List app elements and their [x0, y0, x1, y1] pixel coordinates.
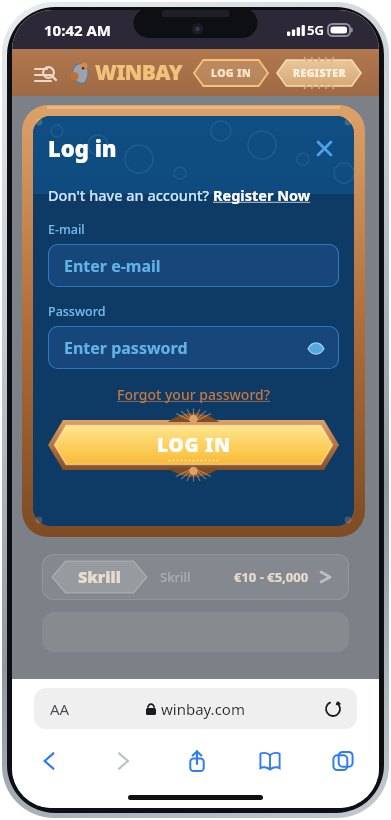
staticText: WINBAY — [95, 58, 183, 87]
staticText: Password — [48, 303, 106, 320]
button[interactable]: Close — [309, 133, 339, 163]
button[interactable]: Search menu — [30, 58, 60, 88]
staticText: REGISTER — [293, 66, 346, 80]
button[interactable]: REGISTER — [277, 60, 361, 86]
staticText: AA — [50, 699, 70, 719]
button[interactable]: Bookmarks — [233, 741, 306, 781]
button[interactable]: LOG IN — [194, 60, 268, 86]
button[interactable]: AA — [34, 688, 357, 729]
button[interactable]: Enter e-mail — [48, 244, 339, 287]
staticText: Enter e-mail — [64, 255, 161, 277]
button[interactable]: Forgot your password? — [117, 385, 270, 404]
button[interactable]: Register Now — [213, 185, 311, 205]
staticText: Skrill — [160, 568, 191, 586]
button[interactable]: Show password — [305, 337, 327, 359]
staticText: 10:42 AM — [44, 20, 111, 40]
staticText: Skrill — [78, 566, 121, 588]
button[interactable]: LOG IN — [48, 418, 339, 472]
staticText: LOG IN — [211, 66, 251, 80]
button[interactable]: Skrill — [42, 554, 349, 600]
button[interactable]: Reload — [323, 699, 343, 719]
staticText: winbay.com — [161, 699, 245, 719]
staticText: Log in — [48, 133, 117, 163]
staticText: LOG IN — [157, 432, 231, 458]
staticText: Don't have an account? — [48, 185, 213, 205]
staticText: Forgot your password? — [117, 385, 270, 404]
staticText: Enter password — [64, 337, 188, 359]
button[interactable]: Tabs — [306, 741, 379, 781]
button[interactable]: Forward — [86, 741, 160, 781]
button[interactable]: Share — [160, 741, 233, 781]
button[interactable]: Enter password — [48, 326, 339, 369]
button[interactable]: Back — [12, 741, 86, 781]
staticText: Register Now — [213, 185, 311, 205]
staticText: 5G — [307, 21, 324, 39]
staticText: E-mail — [48, 221, 85, 238]
staticText: €10 - €5,000 — [234, 568, 309, 586]
